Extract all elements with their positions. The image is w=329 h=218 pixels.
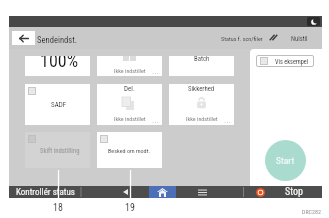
button[interactable]: SADF — [25, 84, 90, 125]
staticText: 100% — [40, 56, 79, 70]
staticText: Sendeindst. — [37, 35, 78, 45]
button[interactable]: Menu — [192, 186, 212, 198]
staticText: Ikke indstillet — [114, 115, 146, 122]
staticText: Del. — [124, 85, 135, 93]
staticText: Besked om modt. — [108, 147, 151, 154]
button[interactable]: Status f. scn/filer — [221, 35, 263, 42]
staticText: Start — [276, 155, 295, 166]
button[interactable]: Home — [149, 186, 176, 198]
button[interactable]: Back — [12, 31, 35, 45]
button[interactable]: 100% — [25, 56, 90, 76]
button[interactable]: Ikke indstillet — [97, 56, 162, 76]
button[interactable]: Sleep mode — [307, 17, 320, 26]
button[interactable]: Sikkerhed — [169, 84, 234, 125]
staticText: 19 — [125, 202, 135, 214]
button[interactable]: Kontrollér status — [9, 186, 81, 198]
button[interactable]: Nulstil — [291, 35, 308, 43]
staticText: Batch — [194, 56, 210, 63]
staticText: Sikkerhed — [188, 85, 215, 93]
button[interactable]: Besked om modt. — [97, 132, 162, 168]
staticText: Vis eksempel — [275, 58, 309, 65]
button[interactable]: Start — [265, 140, 306, 181]
button[interactable]: Skift indstilling — [25, 132, 90, 168]
staticText: Kontrollér status — [16, 187, 75, 198]
staticText: Ikke indstillet — [186, 115, 218, 122]
staticText: Stop — [285, 186, 303, 198]
staticText: DRC282 — [302, 208, 321, 215]
staticText: 18 — [53, 202, 63, 214]
button[interactable]: Shortcuts — [269, 34, 278, 41]
button[interactable]: Batch — [169, 56, 234, 76]
staticText: SADF — [51, 101, 67, 109]
button[interactable]: Vis eksempel — [256, 55, 314, 67]
staticText: Ikke indstillet — [114, 67, 146, 74]
button[interactable]: Stop — [244, 186, 322, 198]
staticText: Skift indstilling — [40, 147, 80, 155]
button[interactable]: Del. — [97, 84, 162, 125]
